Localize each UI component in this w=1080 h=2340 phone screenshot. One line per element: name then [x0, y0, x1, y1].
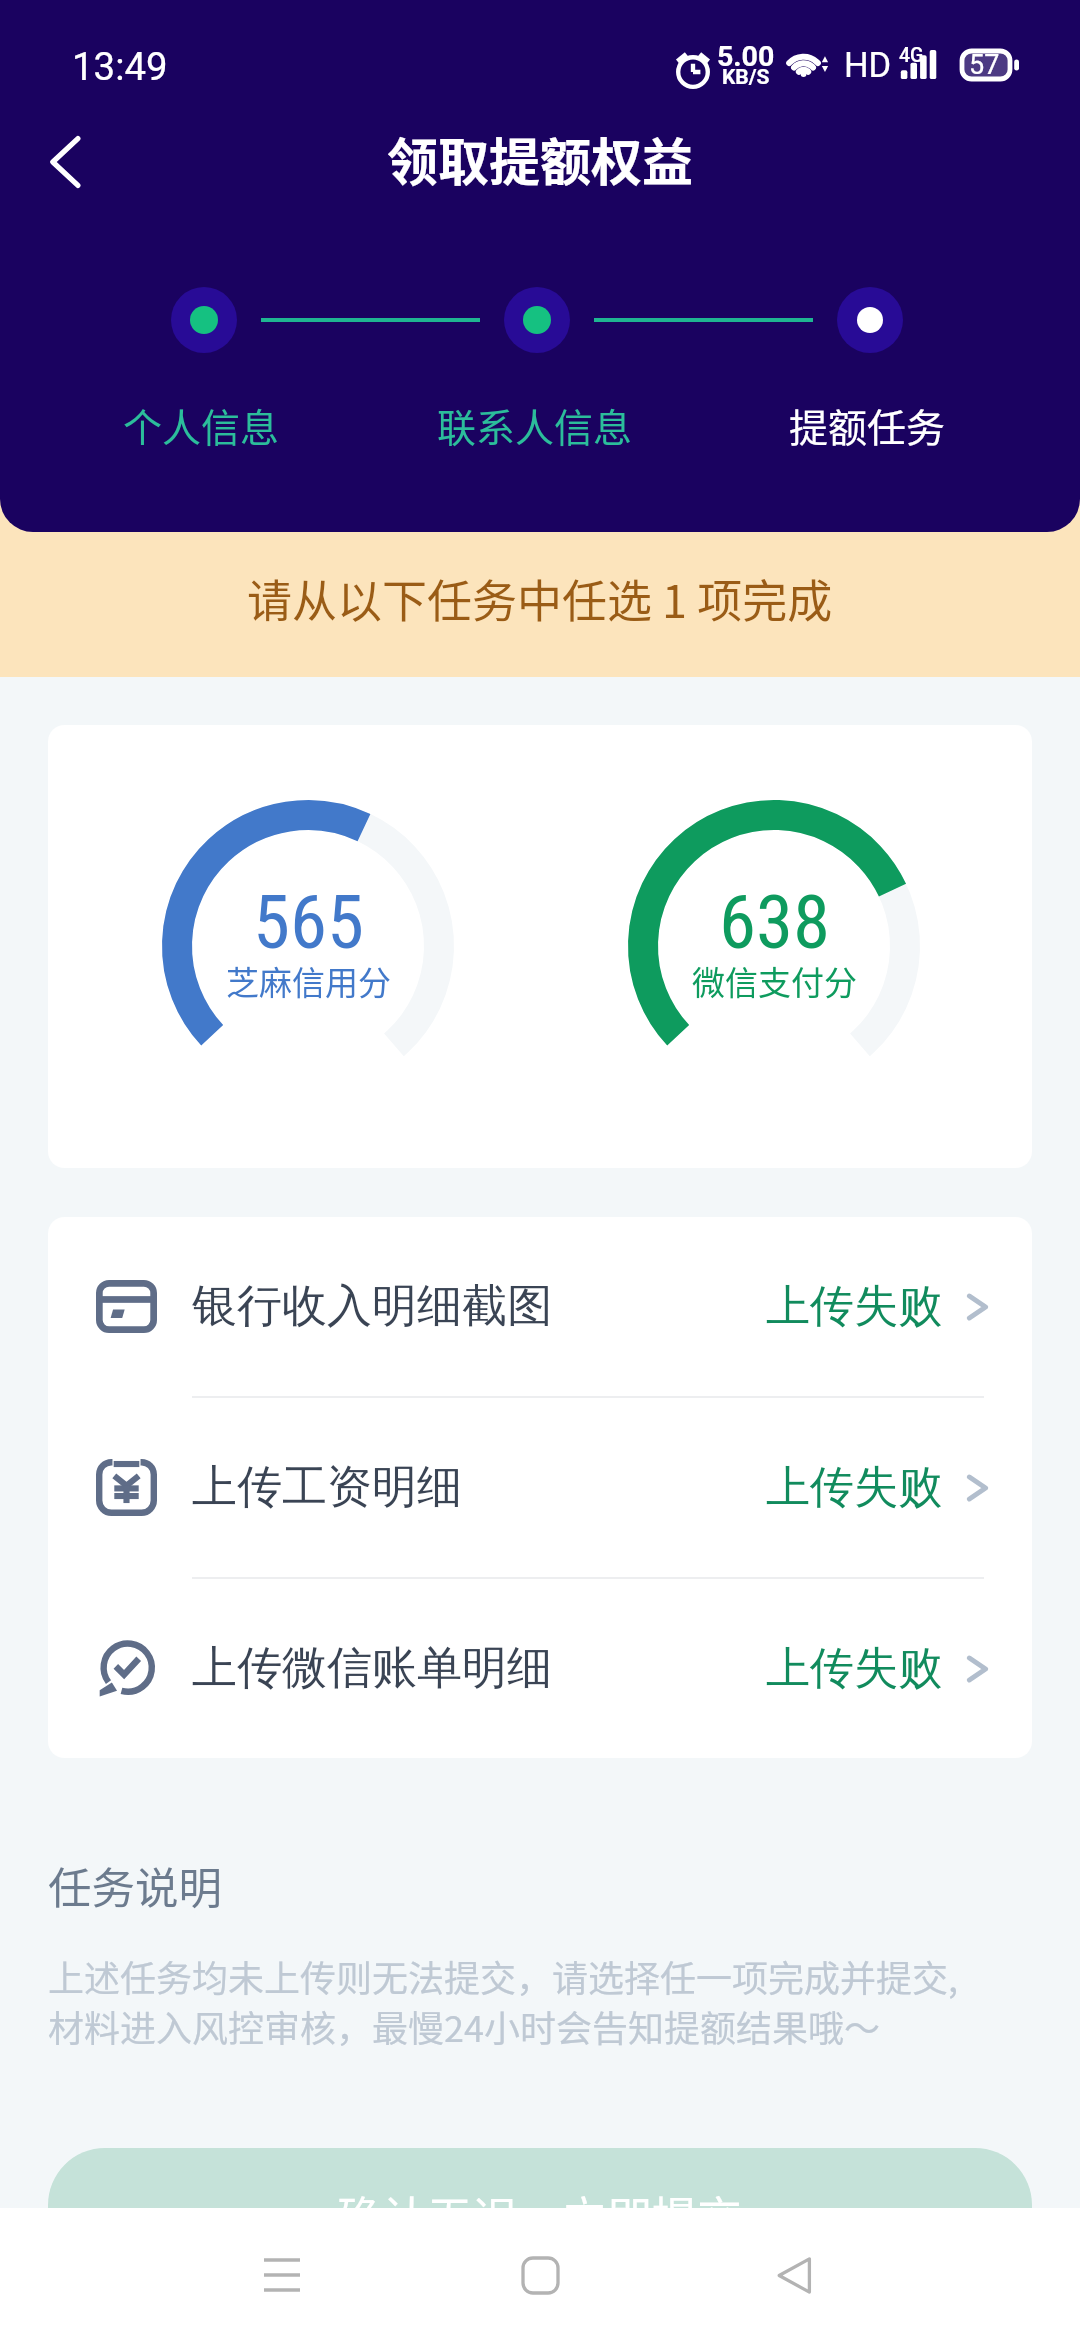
staticText: 联系人信息: [437, 397, 633, 453]
staticText: 确认无误，立即提交: [337, 2183, 743, 2248]
button[interactable]: Recent apps: [238, 2231, 326, 2319]
staticText: 个人信息: [123, 397, 280, 453]
button[interactable]: 银行收入明细截图: [48, 1217, 1032, 1396]
staticText: 任务说明: [48, 1854, 222, 1917]
staticText: 上传微信账单明细: [192, 1640, 552, 1697]
staticText: 上述任务均未上传则无法提交，请选择任一项完成并提交, 材料进入风控审核，最慢24…: [48, 1950, 959, 2053]
staticText: 上传失败: [766, 1279, 943, 1335]
staticText: 4G: [899, 44, 924, 67]
staticText: 上传工资明细: [192, 1459, 462, 1516]
button[interactable]: 上传工资明细: [48, 1398, 1032, 1577]
staticText: 微信支付分: [692, 957, 857, 1005]
staticText: 芝麻信用分: [226, 957, 391, 1005]
staticText: 请从以下任务中任选 1 项完成: [247, 566, 833, 631]
staticText: 上传失败: [766, 1641, 943, 1697]
staticText: 57: [969, 49, 1000, 81]
staticText: 5.00: [717, 40, 775, 73]
staticText: 13:49: [72, 44, 168, 89]
staticText: 领取提额权益: [387, 122, 694, 196]
button[interactable]: Back: [751, 2231, 839, 2319]
button[interactable]: 确认无误，立即提交: [48, 2148, 1032, 2298]
staticText: KB/S: [722, 65, 770, 90]
button[interactable]: 上传微信账单明细: [48, 1579, 1032, 1758]
button[interactable]: Home: [496, 2231, 584, 2319]
staticText: 565: [253, 878, 365, 966]
staticText: HD: [844, 45, 892, 85]
staticText: 638: [719, 878, 831, 966]
staticText: 提额任务: [789, 397, 946, 453]
staticText: 银行收入明细截图: [192, 1278, 552, 1335]
button[interactable]: Back: [12, 108, 120, 216]
staticText: 上传失败: [766, 1460, 943, 1516]
